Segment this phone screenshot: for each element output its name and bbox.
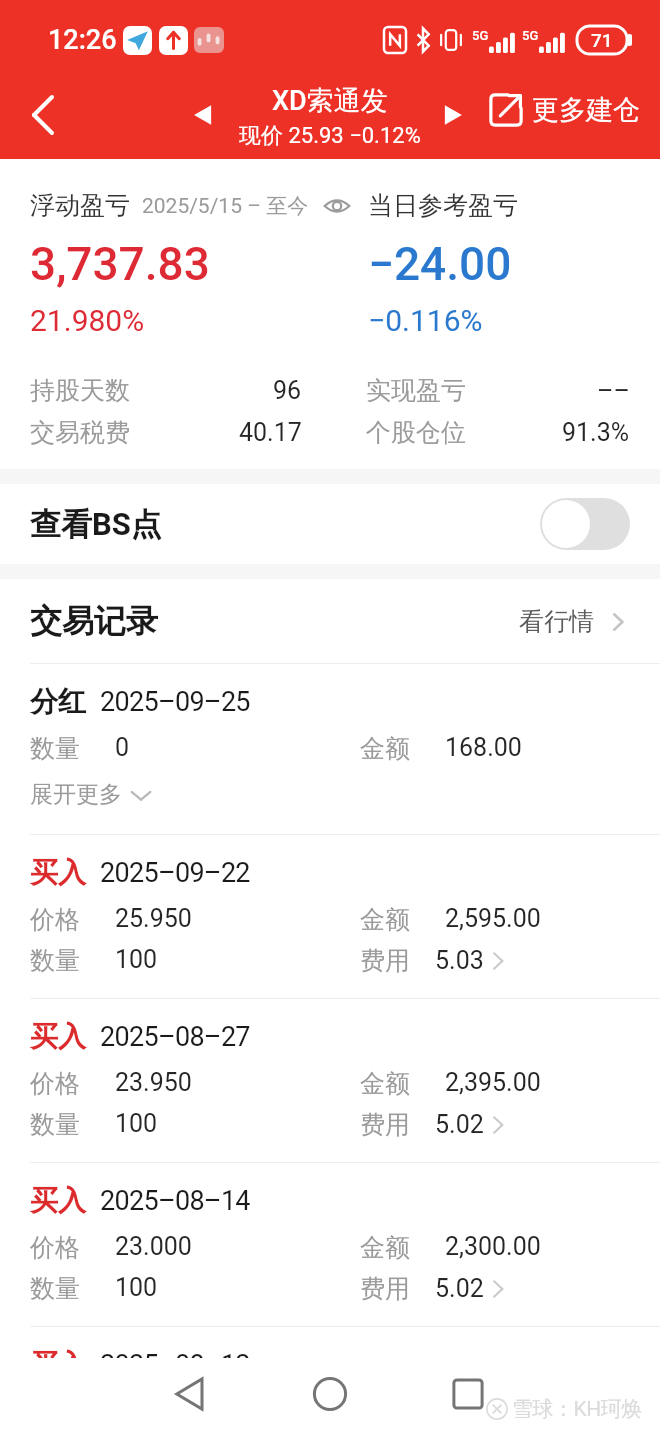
button[interactable]: Back xyxy=(160,1364,220,1424)
staticText: 2,395.00 xyxy=(445,1068,541,1097)
staticText: 2025–09–22 xyxy=(100,857,250,889)
staticText: 交易税费 xyxy=(30,417,130,448)
button[interactable]: Back xyxy=(14,86,72,144)
staticText: 2025–08–12 xyxy=(100,1349,250,1381)
staticText: 持股天数 xyxy=(30,375,130,406)
staticText: 买入 xyxy=(30,1019,86,1054)
staticText: 2025–08–27 xyxy=(100,1021,250,1053)
staticText: 雪球：KH珂焕 xyxy=(512,1396,642,1422)
staticText: 浮动盈亏 xyxy=(30,190,130,221)
staticText: 2025–08–14 xyxy=(100,1185,250,1217)
staticText: 费用 xyxy=(360,945,410,976)
button[interactable]: 查看BS点 xyxy=(0,484,660,564)
staticText: 3,737.83 xyxy=(30,237,368,291)
staticText: 2,595.00 xyxy=(445,904,541,933)
staticText: 价格 xyxy=(30,904,80,935)
staticText: 数量 xyxy=(30,945,80,976)
staticText: 数量 xyxy=(30,733,80,764)
staticText: 25.950 xyxy=(115,904,192,933)
staticText: 2,300.00 xyxy=(445,1232,541,1261)
staticText: 21.980% xyxy=(30,303,368,338)
staticText: 看行情 xyxy=(519,606,594,637)
staticText: 买入 xyxy=(30,855,86,890)
staticText: 2025–09–25 xyxy=(100,686,250,718)
staticText: 查看BS点 xyxy=(30,505,540,544)
staticText: 40.17 xyxy=(239,418,302,447)
staticText: 5.02 xyxy=(435,1274,484,1303)
staticText: 数量 xyxy=(30,1109,80,1140)
staticText: −24.00 xyxy=(368,237,512,291)
staticText: 展开更多 xyxy=(30,780,122,809)
button[interactable]: Next stock xyxy=(432,92,478,138)
staticText: 5G xyxy=(522,28,539,43)
staticText: −0.116% xyxy=(368,303,483,338)
staticText: –– xyxy=(597,376,630,405)
button[interactable]: 买入 xyxy=(0,1162,660,1326)
staticText: 2,200.00 xyxy=(445,1396,541,1425)
staticText: 23.000 xyxy=(115,1232,192,1261)
staticText: 实现盈亏 xyxy=(366,375,466,406)
button[interactable]: Previous stock xyxy=(178,92,224,138)
button[interactable]: Recents xyxy=(438,1364,498,1424)
button[interactable]: Home xyxy=(300,1364,360,1424)
staticText: 价格 xyxy=(30,1068,80,1099)
staticText: XD索通发 xyxy=(272,84,388,118)
staticText: 分红 xyxy=(30,684,86,719)
staticText: 12:26 xyxy=(48,24,117,56)
staticText: 个股仓位 xyxy=(366,417,466,448)
staticText: 金额 xyxy=(360,733,410,764)
staticText: 100 xyxy=(115,1109,158,1138)
staticText: 5.03 xyxy=(435,946,484,975)
staticText: 0 xyxy=(115,733,130,762)
staticText: 数量 xyxy=(30,1273,80,1304)
button[interactable]: 更多建仓 xyxy=(488,92,640,128)
button[interactable]: 买入 xyxy=(0,834,660,998)
staticText: 5G xyxy=(472,28,489,43)
staticText: 买入 xyxy=(30,1183,86,1218)
staticText: 5.02 xyxy=(435,1110,484,1139)
staticText: 71 xyxy=(591,29,613,51)
staticText: 100 xyxy=(115,945,158,974)
staticText: 100 xyxy=(115,1273,158,1302)
staticText: 168.00 xyxy=(445,733,522,762)
staticText: 2025/5/15 – 至今 xyxy=(142,193,309,219)
other: Toggle visibility xyxy=(323,192,351,220)
staticText: 金额 xyxy=(360,1068,410,1099)
staticText: 91.3% xyxy=(562,418,630,447)
staticText: 当日参考盈亏 xyxy=(368,190,518,221)
staticText: 交易记录 xyxy=(30,601,519,641)
staticText: 金额 xyxy=(360,904,410,935)
staticText: 价格 xyxy=(30,1232,80,1263)
staticText: 费用 xyxy=(360,1109,410,1140)
staticText: 现价 25.93 −0.12% xyxy=(239,122,421,150)
button[interactable]: 看行情 xyxy=(519,606,630,637)
staticText: 费用 xyxy=(360,1273,410,1304)
button[interactable]: 买入 xyxy=(0,998,660,1162)
staticText: 金额 xyxy=(360,1232,410,1263)
staticText: 买入 xyxy=(30,1347,86,1382)
button[interactable]: 分红 xyxy=(0,663,660,834)
staticText: 更多建仓 xyxy=(532,93,640,127)
button[interactable]: 买入 xyxy=(0,1326,660,1429)
staticText: 96 xyxy=(273,376,302,405)
staticText: 22.000 xyxy=(115,1396,192,1425)
staticText: 23.950 xyxy=(115,1068,192,1097)
